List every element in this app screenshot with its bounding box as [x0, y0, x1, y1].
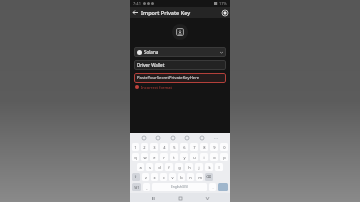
button[interactable]: Backspace — [205, 173, 213, 181]
button[interactable]: f — [165, 163, 173, 171]
staticText: 2 — [143, 145, 146, 150]
button[interactable]: q — [132, 153, 139, 161]
button[interactable]: 2 — [141, 143, 148, 151]
button[interactable]: Back — [203, 194, 211, 202]
staticText: 6 — [183, 145, 186, 150]
button[interactable]: d — [155, 163, 163, 171]
staticText: 4 — [163, 145, 166, 150]
button[interactable]: 1 — [132, 143, 139, 151]
button[interactable]: s — [146, 163, 153, 171]
button[interactable]: i — [200, 153, 208, 161]
staticText: x — [153, 175, 156, 180]
staticText: q — [134, 155, 137, 160]
button[interactable]: x — [151, 173, 158, 181]
button[interactable]: k — [205, 163, 213, 171]
staticText: e — [153, 155, 156, 160]
staticText: o — [213, 155, 216, 160]
staticText: Driver Wallet — [137, 62, 165, 68]
staticText: m — [198, 175, 202, 180]
staticText: n — [189, 175, 192, 180]
button[interactable]: PasteYourSecretPrivateKeyHere — [134, 73, 226, 83]
staticText: ⇧ — [134, 175, 138, 179]
button[interactable]: o — [210, 153, 218, 161]
staticText: u — [193, 155, 196, 160]
button[interactable]: More — [213, 135, 219, 141]
staticText: w — [143, 155, 147, 160]
staticText: Import Private Key — [141, 9, 191, 16]
button[interactable]: z — [142, 173, 149, 181]
button[interactable]: Keyboard tool 2 — [155, 135, 161, 141]
button[interactable]: l — [215, 163, 223, 171]
button[interactable]: 3 — [150, 143, 158, 151]
button[interactable]: p — [220, 153, 228, 161]
button[interactable]: Keyboard tool 3 — [170, 135, 176, 141]
button[interactable]: Back — [130, 7, 141, 18]
button[interactable]: 6 — [180, 143, 188, 151]
button[interactable]: b — [178, 173, 185, 181]
button[interactable]: Home — [176, 194, 184, 202]
button[interactable]: . — [209, 183, 216, 191]
button[interactable]: , — [143, 183, 150, 191]
button[interactable]: m — [196, 173, 203, 181]
button[interactable]: Keyboard tool 5 — [199, 135, 205, 141]
staticText: t — [173, 155, 175, 160]
staticText: 0 — [223, 145, 226, 150]
staticText: PasteYourSecretPrivateKeyHere — [137, 75, 200, 81]
staticText: !#1 — [134, 185, 140, 190]
staticText: English(US) — [171, 185, 188, 189]
button[interactable]: Symbols — [132, 183, 141, 191]
button[interactable]: Recents — [149, 194, 157, 202]
button[interactable]: t — [170, 153, 178, 161]
staticText: v — [171, 175, 174, 180]
button[interactable]: Keyboard tool 4 — [184, 135, 190, 141]
staticText: d — [158, 165, 161, 170]
staticText: Incorrect format — [141, 85, 172, 90]
staticText: h — [188, 165, 191, 170]
button[interactable]: e — [150, 153, 158, 161]
button[interactable]: Shift — [132, 173, 140, 181]
staticText: g — [178, 165, 181, 170]
staticText: b — [180, 175, 183, 180]
staticText: . — [212, 185, 214, 190]
staticText: l — [218, 165, 220, 170]
button[interactable]: Driver Wallet — [134, 60, 226, 70]
button[interactable]: r — [160, 153, 168, 161]
button[interactable]: n — [187, 173, 194, 181]
staticText: 3 — [153, 145, 156, 150]
button[interactable]: 9 — [210, 143, 218, 151]
button[interactable]: Done — [218, 183, 228, 191]
staticText: 17% — [219, 1, 227, 6]
button[interactable]: j — [195, 163, 203, 171]
button[interactable]: h — [185, 163, 193, 171]
button[interactable]: Solana — [134, 47, 226, 57]
staticText: z — [145, 175, 147, 180]
staticText: s — [149, 165, 151, 170]
staticText: 9 — [213, 145, 216, 150]
button[interactable]: 4 — [160, 143, 168, 151]
staticText: 1 — [134, 145, 137, 150]
staticText: c — [163, 175, 165, 180]
staticText: , — [146, 185, 148, 190]
button[interactable]: u — [190, 153, 198, 161]
button[interactable]: c — [160, 173, 167, 181]
button[interactable]: 7 — [190, 143, 198, 151]
staticText: ⌫ — [206, 175, 212, 179]
button[interactable]: g — [175, 163, 183, 171]
staticText: j — [198, 165, 200, 170]
staticText: r — [163, 155, 165, 160]
button[interactable]: 5 — [170, 143, 178, 151]
staticText: 7 — [193, 145, 196, 150]
button[interactable]: v — [169, 173, 176, 181]
button[interactable]: a — [137, 163, 144, 171]
button[interactable]: Space — [152, 183, 207, 191]
button[interactable]: Info — [219, 7, 230, 18]
staticText: i — [203, 155, 205, 160]
button[interactable]: w — [141, 153, 148, 161]
button[interactable]: y — [180, 153, 188, 161]
button[interactable]: 8 — [200, 143, 208, 151]
staticText: a — [139, 165, 142, 170]
staticText: 8 — [203, 145, 206, 150]
button[interactable]: 0 — [220, 143, 228, 151]
button[interactable]: Keyboard tool 1 — [141, 135, 147, 141]
staticText: y — [183, 155, 186, 160]
